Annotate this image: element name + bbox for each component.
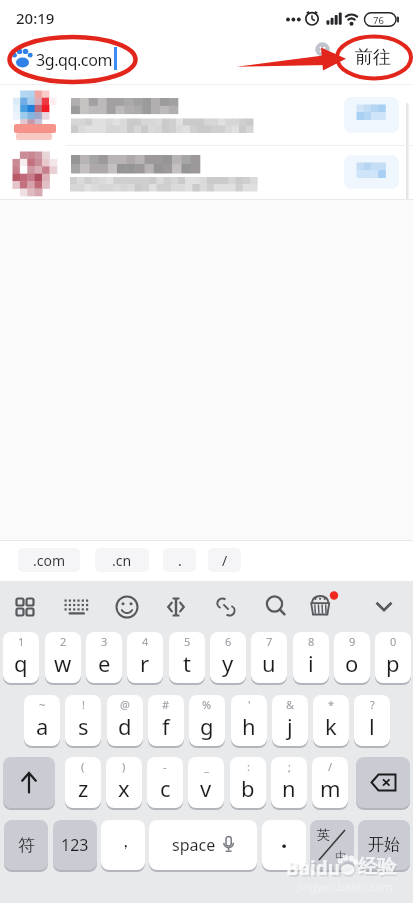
staticText: 经验 (358, 855, 396, 879)
staticText: z (78, 773, 89, 803)
button[interactable]: ， (101, 820, 145, 870)
button[interactable] (163, 589, 199, 625)
staticText: i (308, 648, 314, 678)
button[interactable]: . (163, 548, 196, 572)
button[interactable]: 3 (86, 632, 122, 683)
staticText: 英 (317, 826, 330, 842)
staticText: # (162, 697, 170, 712)
staticText: 123 (61, 834, 89, 856)
button[interactable]: 6 (210, 632, 246, 683)
staticText: 5 (184, 634, 191, 649)
staticText: 4 (142, 634, 149, 649)
staticText: ' (248, 697, 251, 712)
staticText: m (320, 773, 341, 803)
button[interactable] (0, 85, 413, 145)
staticText: k (325, 711, 337, 741)
button[interactable]: 英 (310, 820, 354, 870)
button[interactable]: ? (354, 695, 390, 746)
button[interactable] (356, 757, 410, 808)
button[interactable]: _ (188, 757, 224, 808)
button[interactable]: 2 (45, 632, 81, 683)
button[interactable] (60, 589, 96, 625)
staticText: 7 (266, 634, 273, 649)
staticText: _ (204, 759, 209, 774)
staticText: 3 (101, 634, 108, 649)
staticText: n (282, 773, 296, 803)
button[interactable]: % (189, 695, 225, 746)
button[interactable]: ( (65, 757, 101, 808)
button[interactable] (111, 589, 147, 625)
staticText: ， (117, 831, 134, 852)
staticText: .cn (112, 551, 132, 570)
button[interactable]: .com (18, 548, 80, 572)
staticText: q (14, 648, 28, 678)
button[interactable] (3, 757, 55, 808)
staticText: . (178, 551, 182, 570)
staticText: / (222, 551, 228, 570)
button[interactable]: 开始 (358, 820, 410, 870)
button[interactable]: .cn (95, 548, 149, 572)
button[interactable] (344, 97, 399, 133)
staticText: h (242, 711, 256, 741)
button[interactable]: : (230, 757, 266, 808)
button[interactable]: 7 (251, 632, 287, 683)
button[interactable] (348, 42, 400, 72)
staticText: v (200, 773, 212, 803)
button[interactable]: & (272, 695, 308, 746)
button[interactable] (214, 589, 250, 625)
button[interactable]: ; (271, 757, 307, 808)
button[interactable]: 1 (3, 632, 39, 683)
button[interactable]: ' (231, 695, 267, 746)
staticText: 8 (308, 634, 315, 649)
button[interactable] (8, 589, 44, 625)
button[interactable]: 符 (4, 820, 48, 870)
staticText: 符 (18, 835, 35, 856)
button[interactable]: 0 (375, 632, 411, 683)
button[interactable] (0, 146, 413, 200)
staticText: ~ (39, 697, 46, 712)
staticText: - (163, 759, 167, 774)
staticText: o (345, 648, 359, 678)
button[interactable]: 5 (169, 632, 205, 683)
button[interactable]: ~ (24, 695, 60, 746)
staticText: ) (122, 759, 126, 774)
button[interactable] (344, 155, 399, 189)
button[interactable]: 8 (293, 632, 329, 683)
staticText: 2 (60, 634, 67, 649)
staticText: & (286, 697, 295, 712)
staticText: 20:19 (16, 8, 55, 28)
staticText: 中 (335, 849, 347, 864)
button[interactable]: - (147, 757, 183, 808)
button[interactable]: # (148, 695, 184, 746)
button[interactable]: ! (65, 695, 101, 746)
button[interactable]: · (262, 820, 306, 870)
staticText: 0 (390, 634, 397, 649)
staticText: 前往 (355, 46, 391, 69)
staticText: * (328, 697, 335, 712)
button[interactable]: * (313, 695, 349, 746)
button[interactable]: 4 (127, 632, 163, 683)
staticText: · (281, 830, 288, 860)
staticText: b (241, 773, 255, 803)
staticText: : (247, 759, 250, 774)
button[interactable]: space (149, 820, 257, 870)
staticText: d (118, 711, 132, 741)
button[interactable]: / (208, 548, 241, 572)
staticText: 6 (225, 634, 232, 649)
button[interactable] (266, 589, 302, 625)
staticText: 3g.qq.com (36, 49, 112, 71)
button[interactable]: / (312, 757, 348, 808)
staticText: w (54, 648, 72, 678)
staticText: r (140, 648, 150, 678)
staticText: f (162, 711, 170, 741)
button[interactable]: @ (107, 695, 143, 746)
staticText: x (118, 773, 130, 803)
staticText: 经验 (359, 857, 397, 881)
button[interactable]: 9 (334, 632, 370, 683)
staticText: s (78, 711, 89, 741)
button[interactable] (318, 589, 354, 625)
button[interactable] (369, 589, 405, 625)
button[interactable]: ) (106, 757, 142, 808)
button[interactable]: 123 (53, 820, 97, 870)
staticText: .com (33, 551, 66, 570)
